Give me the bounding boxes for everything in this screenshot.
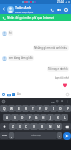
button[interactable]: N (46, 123, 54, 130)
button[interactable]: K (54, 114, 61, 121)
staticText: K (57, 116, 59, 120)
staticText: N (49, 125, 52, 129)
staticText: E (18, 107, 20, 111)
staticText: M (57, 125, 60, 129)
button[interactable]: hi (8, 30, 13, 36)
staticText: B (41, 125, 44, 129)
button[interactable]: Những gì em nói anh hiểu (33, 45, 69, 51)
staticText: S (14, 116, 16, 120)
button[interactable]: F (26, 114, 33, 121)
staticText: bạn tôi nhé (55, 76, 69, 80)
button[interactable]: GIF (50, 99, 55, 104)
button[interactable]: Back (1, 6, 7, 12)
button[interactable]: P (64, 105, 71, 112)
button[interactable]: Like (65, 92, 70, 97)
button[interactable]: Key (0, 123, 9, 130)
button[interactable]: A (3, 114, 11, 121)
button[interactable]: Z (9, 123, 16, 130)
button[interactable]: Call (48, 6, 55, 13)
staticText: U (45, 107, 48, 111)
button[interactable]: Q (0, 105, 8, 112)
staticText: ☺ (56, 100, 59, 103)
staticText: F (29, 116, 31, 120)
button[interactable]: Key (62, 123, 71, 130)
button[interactable]: J (47, 114, 54, 121)
staticText: Nhấn để gọi miễn phí qua Internet (7, 16, 55, 20)
button[interactable]: Conversation information (62, 6, 69, 13)
button[interactable]: . (57, 132, 62, 139)
staticText: X (19, 125, 21, 129)
button[interactable]: D (19, 114, 26, 121)
button[interactable]: Add (1, 92, 6, 97)
staticText: , (11, 134, 12, 138)
button[interactable]: E (15, 105, 22, 112)
button[interactable]: H (40, 114, 47, 121)
button[interactable]: T (29, 105, 36, 112)
staticText: A (6, 116, 9, 120)
staticText: Tuấn Anh (15, 5, 32, 10)
staticText: C (25, 125, 28, 129)
staticText: . (59, 134, 60, 138)
button[interactable]: Keyboard settings (1, 99, 6, 104)
button[interactable]: W (8, 105, 15, 112)
staticText: J (50, 116, 51, 120)
staticText: T (32, 107, 34, 111)
button[interactable]: em đang làm gì đó (8, 55, 34, 61)
button[interactable]: G (33, 114, 40, 121)
staticText: I (53, 107, 55, 111)
staticText: ⚙ (61, 100, 64, 103)
staticText: V (33, 125, 35, 129)
staticText: ⋮ (66, 100, 69, 103)
staticText: em đang làm gì đó (9, 56, 33, 60)
button[interactable]: B (38, 123, 46, 130)
staticText: Y (39, 107, 41, 111)
button[interactable]: Key (14, 132, 57, 139)
button[interactable]: Camera (6, 92, 11, 97)
button[interactable]: ☺ (55, 99, 60, 104)
staticText: R (25, 107, 27, 111)
button[interactable]: C (23, 123, 30, 130)
button[interactable]: V (30, 123, 38, 130)
staticText: Tiếng Việt (31, 134, 41, 137)
staticText: hi (9, 31, 12, 35)
button[interactable]: U (43, 105, 50, 112)
staticText: L (64, 116, 66, 120)
button[interactable]: ⚙ (60, 99, 65, 104)
button[interactable]: S (11, 114, 19, 121)
staticText: G (35, 116, 38, 120)
staticText: O (59, 107, 62, 111)
staticText: Những gì em nói anh hiểu (34, 46, 68, 50)
button[interactable]: R (22, 105, 29, 112)
button[interactable]: Photos (11, 92, 16, 97)
button[interactable]: Video call (55, 6, 62, 13)
button[interactable]: Nhấn để gọi miễn phí qua Internet (0, 14, 71, 21)
staticText: P (67, 107, 69, 111)
staticText: Tối nay e rảnh k (48, 67, 68, 71)
staticText: Z (12, 125, 14, 129)
button[interactable]: X (16, 123, 23, 130)
button[interactable]: Heart sticker (60, 81, 69, 89)
button[interactable]: Key (0, 132, 9, 139)
staticText: D (21, 116, 24, 120)
staticText: Đang hoạt động (15, 10, 34, 13)
staticText: 21:24 (57, 0, 64, 4)
staticText: Q (3, 107, 6, 111)
button[interactable]: O (57, 105, 64, 112)
staticText: Aa (17, 92, 21, 96)
button[interactable]: Y (36, 105, 43, 112)
staticText: ?123 (2, 134, 7, 137)
button[interactable]: Send (63, 132, 71, 140)
button[interactable]: Tối nay e rảnh k (47, 66, 69, 72)
button[interactable]: ⋮ (65, 99, 70, 104)
staticText: W (10, 107, 13, 111)
staticText: GIF (51, 100, 55, 103)
button[interactable]: M (54, 123, 62, 130)
button[interactable]: L (61, 114, 68, 121)
staticText: H (42, 116, 45, 120)
button[interactable]: , (9, 132, 14, 139)
button[interactable]: I (50, 105, 57, 112)
